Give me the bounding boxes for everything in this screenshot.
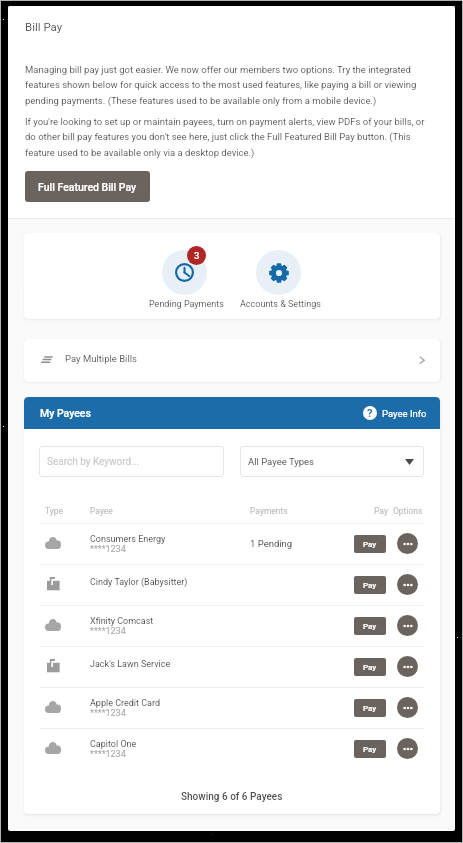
button[interactable]: Accounts & Settings xyxy=(238,247,334,319)
staticText: ****1234 xyxy=(90,749,126,760)
button[interactable]: Search by Keyword... xyxy=(39,446,224,477)
staticText: Pay xyxy=(363,622,377,631)
staticText: ****1234 xyxy=(90,708,126,719)
staticText: Pending Payments xyxy=(149,299,224,310)
staticText: Payee Info xyxy=(382,408,427,419)
staticText: Pay xyxy=(363,540,377,549)
button[interactable]: Consumers Energy xyxy=(24,524,440,564)
staticText: Showing 6 of 6 Payees xyxy=(181,791,283,803)
button[interactable]: More options xyxy=(397,574,418,595)
other: Payee Info xyxy=(363,406,377,420)
staticText: Pay xyxy=(363,704,377,713)
staticText: If you're looking to set up or maintain … xyxy=(25,116,427,159)
button[interactable]: Pay xyxy=(354,535,386,553)
staticText: Options xyxy=(393,506,423,516)
button[interactable]: Payee Info xyxy=(363,403,427,423)
staticText: Pay Multiple Bills xyxy=(65,353,137,364)
staticText: ****1234 xyxy=(90,626,126,637)
button[interactable]: Apple Credit Card xyxy=(24,688,440,728)
staticText: Pay xyxy=(374,506,388,516)
button[interactable]: Capitol One xyxy=(24,729,440,769)
staticText: Xfinity Comcast xyxy=(90,616,154,627)
button[interactable]: More options xyxy=(397,615,418,636)
button[interactable]: Pay Multiple Bills xyxy=(24,339,440,382)
staticText: Payee xyxy=(90,506,113,516)
staticText: Cindy Taylor (Babysitter) xyxy=(90,577,188,588)
staticText: My Payees xyxy=(40,407,91,419)
staticText: Pay xyxy=(363,745,377,754)
button[interactable]: Jack's Lawn Service xyxy=(24,647,440,687)
button[interactable]: All Payee Types xyxy=(240,446,424,477)
staticText: Pay xyxy=(363,663,377,672)
button[interactable]: Cindy Taylor (Babysitter) xyxy=(24,565,440,605)
button[interactable]: Full Featured Bill Pay xyxy=(25,171,150,202)
staticText: Type xyxy=(45,506,64,516)
staticText: 3 xyxy=(194,250,200,261)
staticText: ? xyxy=(367,407,373,420)
staticText: Capitol One xyxy=(90,739,137,750)
staticText: Consumers Energy xyxy=(90,534,166,545)
staticText: Payments xyxy=(250,506,288,516)
button[interactable]: Pay xyxy=(354,617,386,635)
button[interactable]: More options xyxy=(397,697,418,718)
staticText: Managing bill pay just got easier. We no… xyxy=(25,64,417,107)
button[interactable]: More options xyxy=(397,533,418,554)
button[interactable]: Pay xyxy=(354,740,386,758)
button[interactable]: Pay xyxy=(354,576,386,594)
staticText: Apple Credit Card xyxy=(90,698,161,709)
staticText: Search by Keyword... xyxy=(47,456,140,468)
staticText: 1 Pending xyxy=(250,538,293,549)
other: Open xyxy=(419,356,425,365)
staticText: Full Featured Bill Pay xyxy=(38,181,137,193)
button[interactable]: More options xyxy=(397,656,418,677)
button[interactable]: Pay xyxy=(354,699,386,717)
button[interactable]: Pending Payments xyxy=(145,247,225,319)
staticText: Jack's Lawn Service xyxy=(90,659,171,670)
staticText: ****1234 xyxy=(90,544,126,555)
staticText: Accounts & Settings xyxy=(240,299,321,310)
staticText: Bill Pay xyxy=(25,20,63,33)
staticText: Pay xyxy=(363,581,377,590)
button[interactable]: More options xyxy=(397,738,418,759)
button[interactable]: Xfinity Comcast xyxy=(24,606,440,646)
staticText: All Payee Types xyxy=(248,456,314,467)
button[interactable]: Pay xyxy=(354,658,386,676)
